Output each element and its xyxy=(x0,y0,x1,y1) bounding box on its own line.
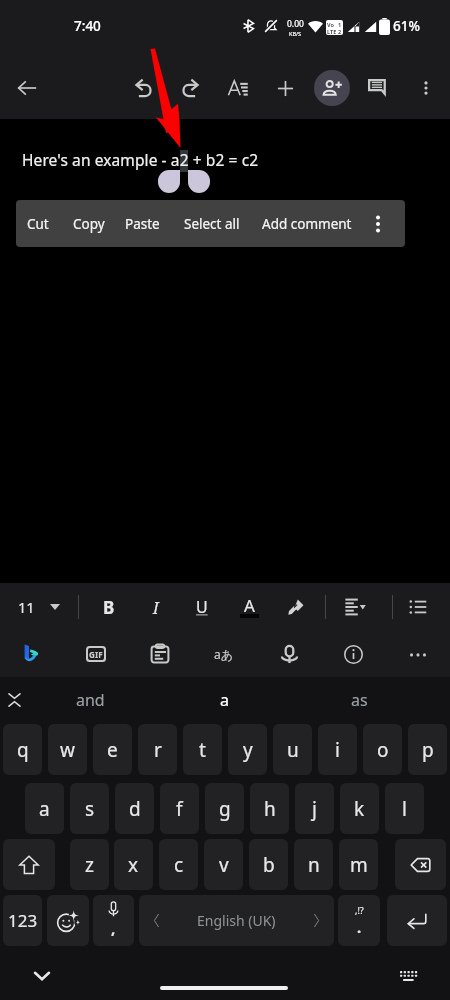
button[interactable]: Text colour xyxy=(229,587,269,627)
button[interactable]: z xyxy=(70,839,109,890)
button[interactable]: Bing search xyxy=(11,634,51,674)
staticText: 2 xyxy=(338,28,342,35)
button[interactable]: Insert xyxy=(265,68,305,108)
button[interactable]: Close suggestions xyxy=(2,688,26,712)
button[interactable]: v xyxy=(204,839,243,890)
button[interactable]: k xyxy=(340,783,379,834)
button[interactable]: f xyxy=(160,783,199,834)
button[interactable]: Back xyxy=(7,68,47,108)
staticText: 1 xyxy=(338,21,342,28)
button[interactable]: x xyxy=(114,839,153,890)
button[interactable]: d xyxy=(115,783,154,834)
button[interactable]: j xyxy=(295,783,334,834)
staticText: 123 xyxy=(8,909,38,932)
button[interactable]: as xyxy=(304,677,414,723)
staticText: . xyxy=(357,917,362,937)
button[interactable]: Space, English (UK) xyxy=(139,895,334,946)
staticText: f xyxy=(176,796,183,822)
button[interactable]: Voice input xyxy=(269,634,309,674)
button[interactable]: e xyxy=(93,724,132,775)
button[interactable]: t xyxy=(183,724,222,775)
button[interactable]: m xyxy=(339,839,378,890)
staticText: g xyxy=(219,796,231,822)
button[interactable]: Selection end handle xyxy=(188,170,210,193)
button[interactable]: a xyxy=(25,783,64,834)
button[interactable]: r xyxy=(138,724,177,775)
button[interactable]: Backspace xyxy=(395,839,446,890)
button[interactable]: Add comment xyxy=(258,200,356,247)
staticText: x xyxy=(128,852,139,878)
button[interactable]: Paste xyxy=(119,200,165,247)
button[interactable]: u xyxy=(273,724,312,775)
button[interactable]: aあ xyxy=(204,634,244,674)
button[interactable]: Select all xyxy=(176,200,248,247)
staticText: Cut xyxy=(27,215,49,233)
button[interactable]: Share xyxy=(314,70,350,106)
button[interactable]: h xyxy=(250,783,289,834)
button[interactable]: q xyxy=(3,724,42,775)
button[interactable]: More xyxy=(361,200,395,247)
staticText: y xyxy=(243,737,253,763)
button[interactable]: o xyxy=(363,724,402,775)
staticText: h xyxy=(264,796,276,822)
button[interactable]: y xyxy=(228,724,267,775)
staticText: p xyxy=(422,737,434,763)
button[interactable]: Underline xyxy=(182,587,222,627)
staticText: r xyxy=(154,737,162,763)
staticText: ,!? xyxy=(355,904,364,916)
staticText: b xyxy=(263,852,275,878)
staticText: i xyxy=(335,737,340,763)
staticText: m xyxy=(350,852,368,878)
button[interactable]: a xyxy=(169,677,279,723)
button[interactable]: p xyxy=(408,724,447,775)
button[interactable]: List xyxy=(398,587,438,627)
button[interactable]: i xyxy=(318,724,357,775)
button[interactable]: GIF xyxy=(76,634,116,674)
button[interactable]: Format text xyxy=(218,68,258,108)
button[interactable]: Italic xyxy=(136,587,176,627)
button[interactable]: Copy xyxy=(68,200,110,247)
staticText: 11 xyxy=(18,597,35,617)
staticText: 61% xyxy=(393,17,420,35)
button[interactable]: Shift xyxy=(3,839,55,890)
button[interactable]: Info xyxy=(333,634,373,674)
button[interactable]: n xyxy=(294,839,333,890)
button[interactable]: Selection start handle xyxy=(158,170,180,193)
button[interactable]: s xyxy=(70,783,109,834)
button[interactable]: Punctuation xyxy=(338,895,380,946)
button[interactable]: Undo xyxy=(123,68,163,108)
button[interactable]: and xyxy=(35,677,145,723)
button[interactable]: Numbers and symbols xyxy=(3,895,42,946)
button[interactable]: Voice input and comma xyxy=(93,895,134,946)
button[interactable]: Bold xyxy=(89,587,129,627)
button[interactable]: Hide keyboard xyxy=(26,960,58,992)
staticText: Paste xyxy=(125,215,160,233)
button[interactable]: More options xyxy=(406,68,446,108)
button[interactable]: g xyxy=(205,783,244,834)
button[interactable]: Comments xyxy=(357,68,397,108)
button[interactable]: Enter xyxy=(387,895,447,946)
button[interactable]: More xyxy=(398,634,438,674)
button[interactable]: w xyxy=(48,724,87,775)
button[interactable]: Switch keyboard xyxy=(392,960,424,992)
button[interactable]: Align xyxy=(335,587,375,627)
button[interactable]: b xyxy=(249,839,288,890)
button[interactable]: l xyxy=(385,783,424,834)
button[interactable]: Redo xyxy=(170,68,210,108)
staticText: w xyxy=(60,737,75,763)
staticText: v xyxy=(219,852,229,878)
staticText: , xyxy=(111,918,116,938)
staticText: k xyxy=(354,796,365,822)
button[interactable]: Font size 11 xyxy=(9,588,71,625)
staticText: A xyxy=(244,594,255,617)
staticText: u xyxy=(287,737,299,763)
button[interactable]: Emoji xyxy=(47,895,89,946)
button[interactable]: Cut xyxy=(21,200,55,247)
button[interactable]: c xyxy=(159,839,198,890)
staticText: U xyxy=(196,596,208,618)
button[interactable]: Clipboard xyxy=(140,634,180,674)
button[interactable]: Highlight xyxy=(275,587,315,627)
staticText: KB/S xyxy=(289,30,302,37)
staticText: q xyxy=(17,737,29,763)
staticText: a xyxy=(220,689,229,711)
